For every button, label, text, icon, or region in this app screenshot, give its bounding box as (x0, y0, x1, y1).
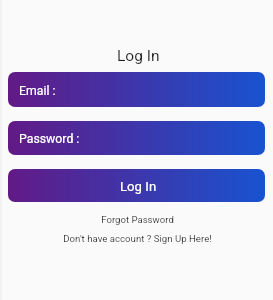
button[interactable]: Log In (8, 169, 265, 202)
staticText: Log In (120, 179, 157, 194)
button[interactable]: Email : (8, 72, 265, 107)
staticText: Password : (19, 132, 80, 146)
button[interactable]: Don't have account ? Sign Up Here! (57, 231, 218, 246)
staticText: Log In (117, 47, 160, 65)
button[interactable]: Password : (8, 121, 265, 155)
staticText: Email : (19, 84, 56, 98)
button[interactable]: Forgot Password (95, 212, 180, 227)
